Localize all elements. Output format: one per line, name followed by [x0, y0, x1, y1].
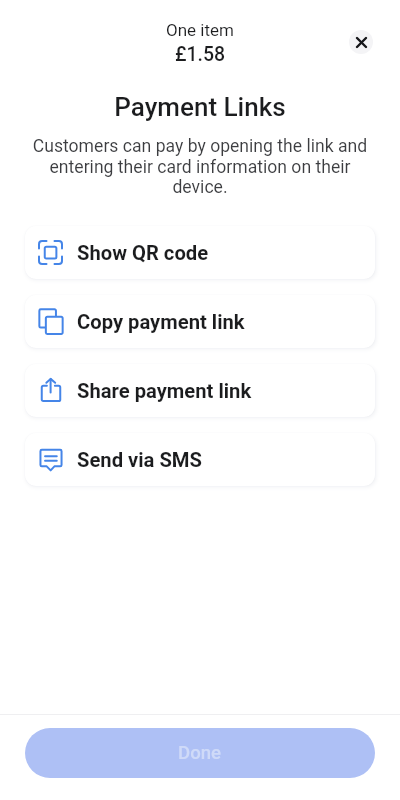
staticText: Payment Links — [0, 92, 400, 122]
staticText: Done — [178, 742, 222, 764]
button[interactable]: Send via SMS — [25, 433, 375, 486]
button[interactable]: Show QR code — [25, 226, 375, 279]
staticText: Customers can pay by opening the link an… — [0, 136, 400, 198]
button[interactable]: Copy payment link — [25, 295, 375, 348]
button[interactable]: Close — [349, 30, 373, 54]
staticText: Show QR code — [77, 241, 209, 265]
staticText: Copy payment link — [77, 310, 245, 334]
staticText: Send via SMS — [77, 448, 202, 472]
staticText: £1.58 — [0, 43, 400, 66]
staticText: Share payment link — [77, 379, 252, 403]
button[interactable]: Done — [25, 728, 375, 778]
staticText: One item — [0, 20, 400, 40]
button[interactable]: Share payment link — [25, 364, 375, 417]
